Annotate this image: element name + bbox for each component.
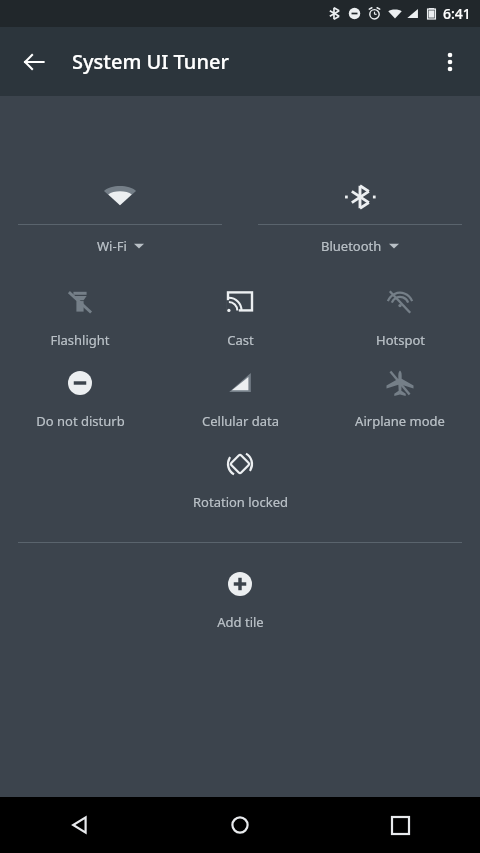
button[interactable]: Back bbox=[0, 797, 160, 853]
button[interactable]: Wi-Fi bbox=[0, 180, 240, 255]
button[interactable]: Back bbox=[10, 38, 58, 86]
button[interactable]: Add tile bbox=[160, 569, 320, 631]
staticText: Cast bbox=[227, 331, 254, 349]
button[interactable]: Do not disturb bbox=[0, 368, 160, 430]
button[interactable]: Airplane mode bbox=[320, 368, 480, 430]
button[interactable]: Hotspot bbox=[320, 287, 480, 349]
staticText: Cellular data bbox=[202, 412, 279, 430]
button[interactable]: Bluetooth bbox=[240, 180, 480, 255]
staticText: Hotspot bbox=[376, 331, 425, 349]
staticText: Airplane mode bbox=[355, 412, 445, 430]
staticText: Rotation locked bbox=[193, 493, 288, 511]
button[interactable]: Cast bbox=[160, 287, 320, 349]
button[interactable]: Cellular data bbox=[160, 368, 320, 430]
staticText: Flashlight bbox=[50, 331, 110, 349]
staticText: Wi-Fi bbox=[97, 237, 127, 255]
staticText: System UI Tuner bbox=[72, 48, 229, 75]
staticText: Do not disturb bbox=[36, 412, 125, 430]
button[interactable]: More options bbox=[426, 38, 474, 86]
button[interactable]: Flashlight bbox=[0, 287, 160, 349]
button[interactable]: Recent apps bbox=[320, 797, 480, 853]
button[interactable]: Rotation locked bbox=[160, 449, 320, 511]
staticText: Add tile bbox=[217, 613, 264, 631]
staticText: 6:41 bbox=[443, 4, 471, 23]
button[interactable]: Home bbox=[160, 797, 320, 853]
staticText: Bluetooth bbox=[321, 237, 382, 255]
